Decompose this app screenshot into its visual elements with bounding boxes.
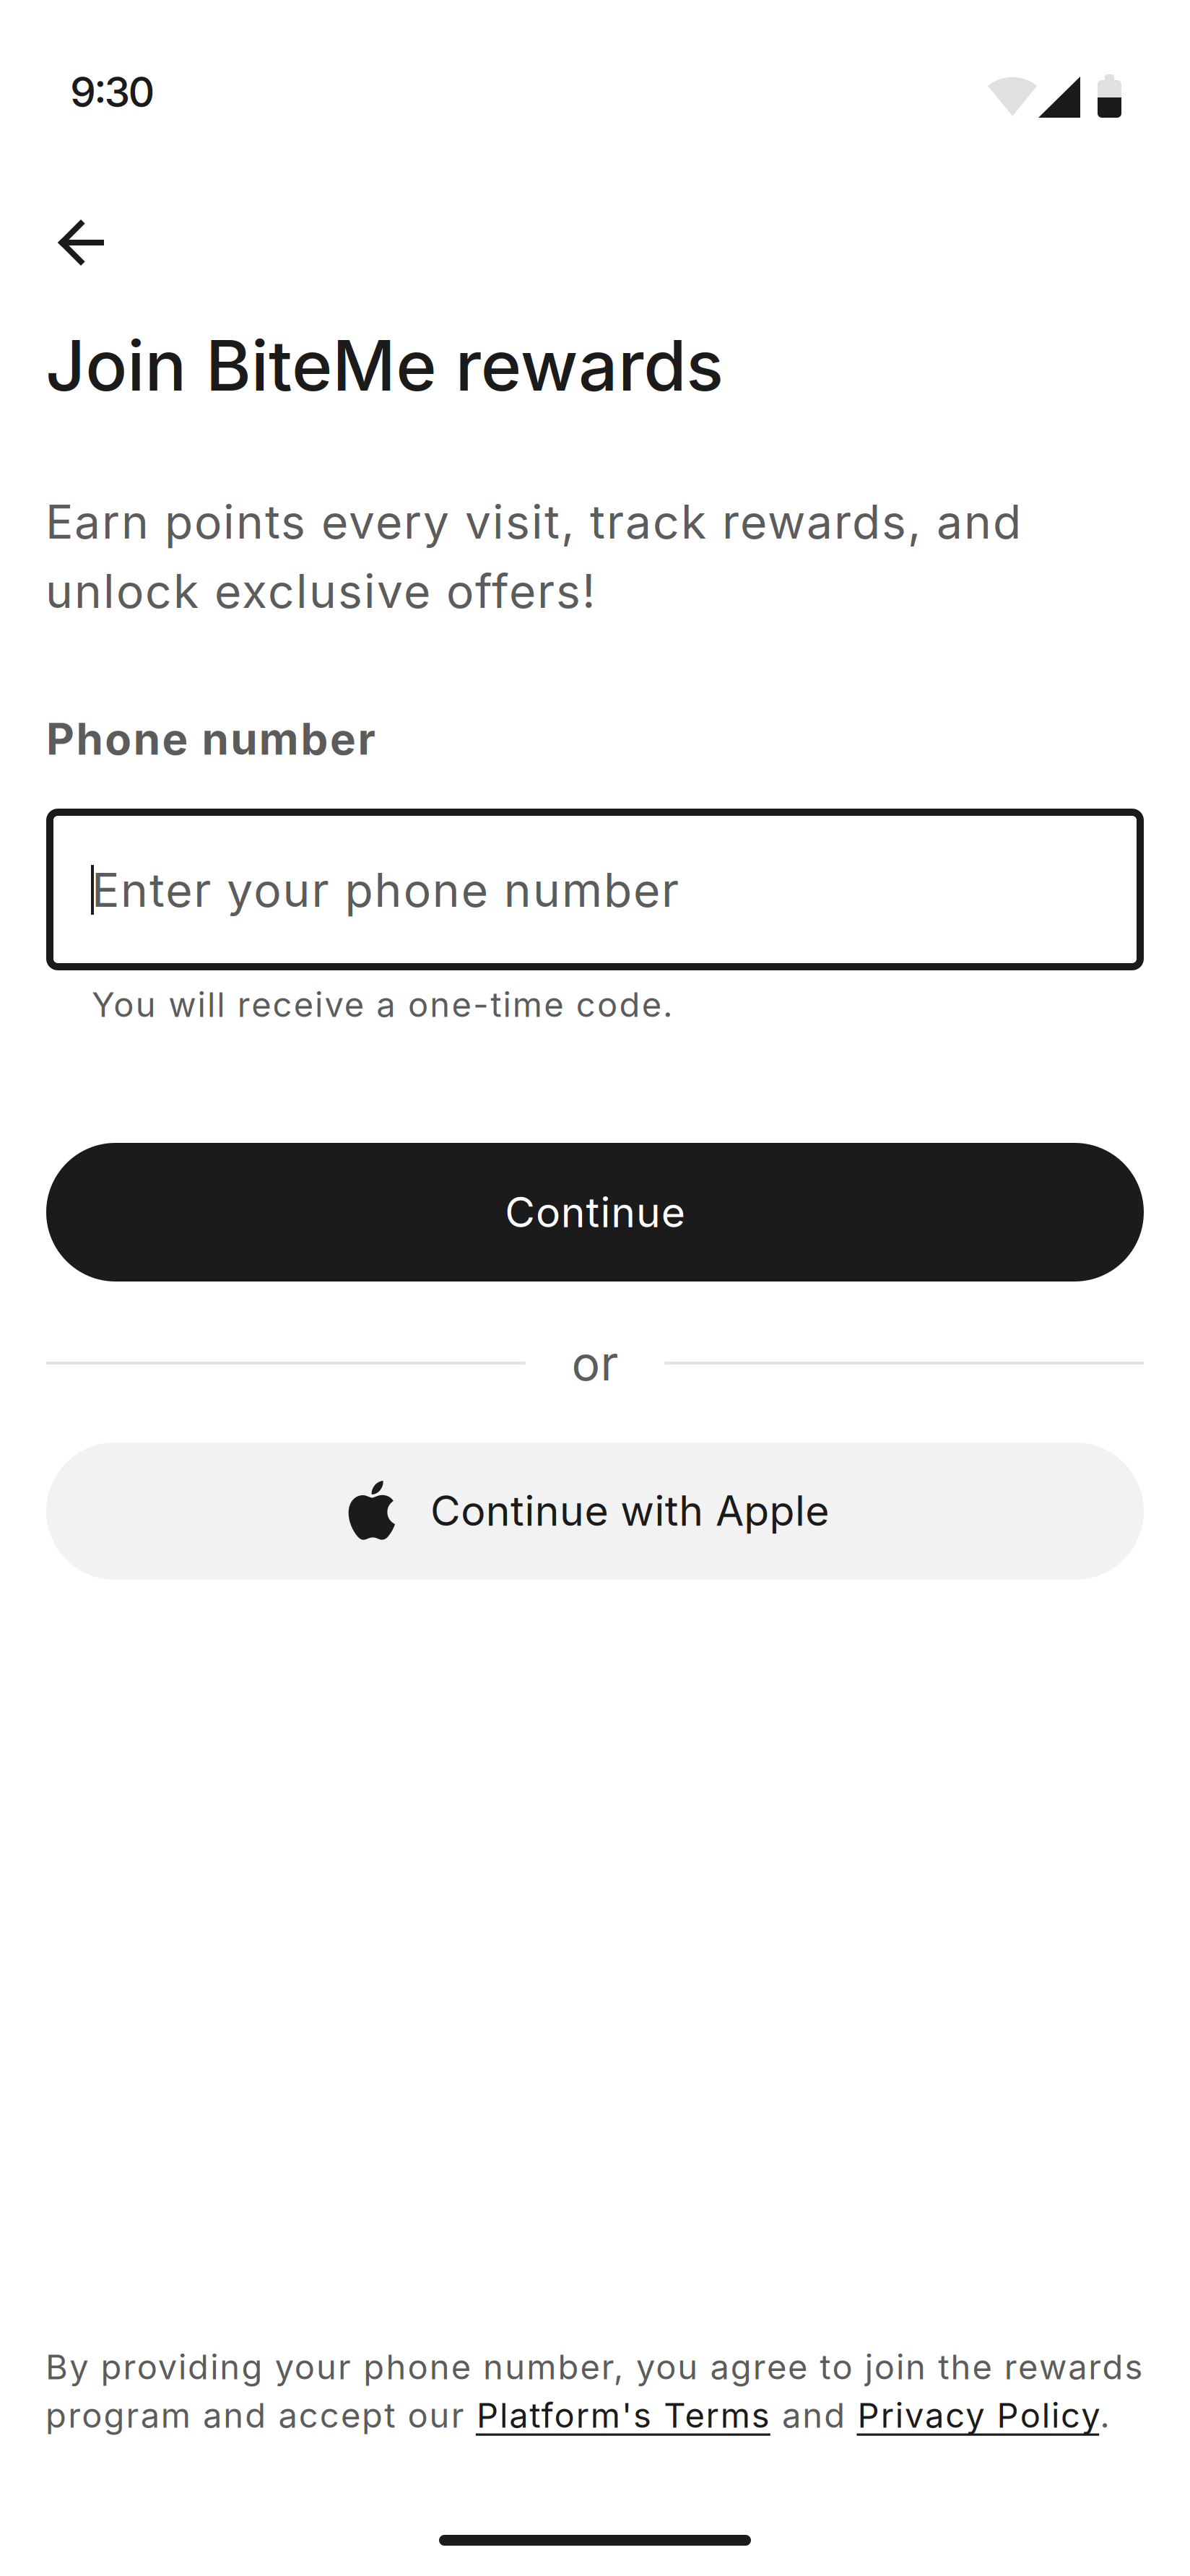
button[interactable]: Continue with Apple: [46, 1443, 1144, 1580]
staticText: Earn points every visit, track rewards, …: [45, 494, 1021, 550]
staticText: Continue with Apple: [430, 1486, 829, 1536]
staticText: Continue: [505, 1187, 685, 1237]
staticText: 9:30: [70, 67, 155, 117]
staticText: Enter your phone number: [92, 862, 679, 918]
staticText: unlock exclusive offers!: [45, 563, 595, 619]
button[interactable]: Privacy Policy: [856, 2398, 1099, 2440]
staticText: By providing your phone number, you agre…: [45, 2346, 1143, 2387]
staticText: Phone number: [46, 713, 375, 765]
staticText: or: [572, 1334, 618, 1392]
button[interactable]: Back: [40, 202, 121, 283]
staticText: program and accept our Platform's Terms …: [45, 2395, 1110, 2436]
staticText: You will receive a one-time code.: [92, 984, 673, 1025]
staticText: Join BiteMe rewards: [45, 323, 724, 407]
button[interactable]: Continue: [46, 1143, 1144, 1282]
button[interactable]: Platform's Terms: [476, 2398, 770, 2440]
